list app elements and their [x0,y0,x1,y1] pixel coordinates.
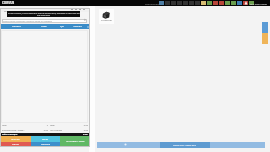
staticText: Recall [42,138,49,141]
staticText: 0.00 [78,129,88,132]
staticText: Total Payable [2,133,18,136]
staticText: CORVUS [2,1,15,5]
staticText: Price [33,25,55,28]
staticText: To find a product, scan its barcode or t… [8,12,80,14]
button[interactable]: Restore [74,8,78,12]
staticText: Cancel [12,143,19,146]
button[interactable]: Search [84,19,86,21]
staticText: 0.00 [36,129,48,132]
staticText: 0.00 [78,124,88,127]
staticText: Amount [69,25,86,28]
staticText: administrator [145,2,161,5]
button[interactable]: Toolbar action [243,1,248,5]
staticText: Total [50,124,78,127]
button[interactable]: User account [244,1,248,5]
staticText: Select Item [4,9,17,12]
staticText: Item [2,124,36,127]
button[interactable]: Taskbar item [124,143,127,146]
staticText: then press Enter [37,14,51,16]
button[interactable]: Hold Bill [0,136,31,142]
staticText: Computer [99,19,114,22]
button[interactable]: Toolbar action [249,1,254,5]
staticText: All Orders / Sales [66,140,85,143]
button[interactable]: Cancel [0,142,31,146]
staticText: Qty [55,25,69,28]
staticText: Payment [41,143,51,146]
staticText: Net Amount [50,129,78,132]
staticText: Search/Scan a barcode, product name or c… [3,20,53,23]
staticText: Hold Bill [11,138,20,141]
button[interactable]: Search/Scan a barcode, product name or c… [2,19,87,23]
staticText: Product [0,25,33,28]
staticText: 4 [36,124,48,127]
button[interactable]: Payment [31,142,60,146]
staticText: test user name [250,2,267,5]
staticText: Payment Type / Mode : [2,129,36,132]
button[interactable]: Recall [31,136,60,142]
button[interactable]: Sort column [86,24,90,29]
button[interactable]: Maximize [78,8,82,12]
button[interactable]: Computer desktop icon [99,9,114,24]
button[interactable]: Minimize [70,8,74,12]
button[interactable]: Close [82,8,86,12]
staticText: Corvus POS - Select Item [173,144,197,147]
staticText: 0.00 [83,133,88,136]
button[interactable]: Corvus POS - Select Item [160,142,210,148]
button[interactable]: All Orders / Sales [60,136,90,146]
